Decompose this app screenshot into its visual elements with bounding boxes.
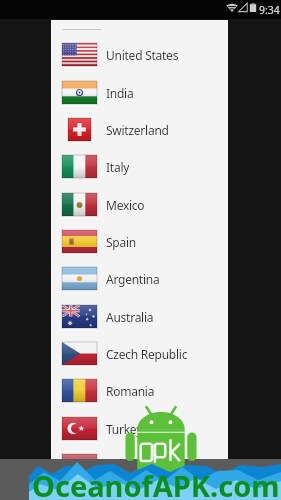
- button[interactable]: Mexico: [51, 186, 228, 223]
- button[interactable]: Switzerland: [51, 111, 228, 148]
- staticText: Turkey: [106, 421, 143, 437]
- staticText: Romania: [106, 383, 155, 399]
- staticText: Italy: [106, 159, 130, 175]
- button[interactable]: Czech Republic: [51, 335, 228, 372]
- staticText: United States: [106, 47, 179, 63]
- button[interactable]: Turkey: [51, 410, 228, 447]
- staticText: Mexico: [106, 197, 145, 213]
- button[interactable]: United States: [51, 36, 228, 73]
- button[interactable]: Spain: [51, 223, 228, 260]
- staticText: Czech Republic: [106, 346, 188, 362]
- button[interactable]: Romania: [51, 372, 228, 409]
- staticText: Switzerland: [106, 122, 169, 138]
- staticText: Spain: [106, 234, 136, 250]
- staticText: Australia: [106, 309, 154, 325]
- button[interactable]: Argentina: [51, 260, 228, 297]
- button[interactable]: Netherlands: [51, 447, 228, 484]
- button[interactable]: India: [51, 74, 228, 111]
- staticText: Netherlands: [106, 458, 173, 474]
- staticText: OceanofAPK.com: [32, 466, 280, 500]
- staticText: Argentina: [106, 271, 160, 287]
- button[interactable]: Australia: [51, 298, 228, 335]
- button[interactable]: Italy: [51, 148, 228, 185]
- staticText: India: [106, 85, 134, 101]
- staticText: 9:34: [259, 3, 280, 17]
